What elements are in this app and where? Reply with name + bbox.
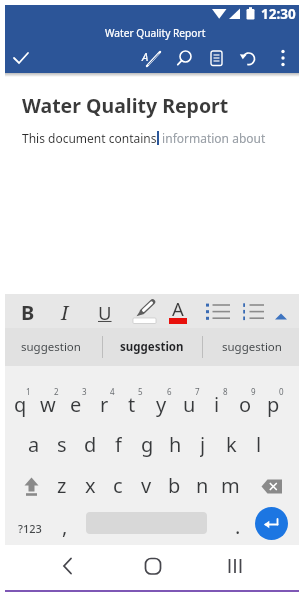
staticText: m <box>221 472 240 498</box>
staticText: 2 <box>54 386 59 397</box>
button[interactable] <box>203 298 233 324</box>
staticText: , <box>62 513 68 537</box>
button[interactable] <box>236 46 262 70</box>
button[interactable]: A <box>165 296 191 326</box>
button[interactable] <box>271 46 295 70</box>
button[interactable]: suggestion <box>4 335 98 359</box>
staticText: 8 <box>223 386 228 397</box>
staticText: i <box>214 391 220 417</box>
staticText: 5 <box>138 386 143 397</box>
button[interactable]: b <box>161 472 187 498</box>
staticText: t <box>128 391 136 417</box>
button[interactable] <box>18 472 46 500</box>
staticText: s <box>57 431 67 457</box>
button[interactable] <box>270 302 292 322</box>
button[interactable]: d <box>77 431 103 457</box>
button[interactable]: U <box>91 297 119 327</box>
button[interactable]: f <box>105 431 131 457</box>
button[interactable]: suggestion <box>205 335 299 359</box>
staticText: k <box>226 431 237 457</box>
button[interactable]: l <box>246 431 272 457</box>
staticText: o <box>239 391 252 417</box>
staticText: 6 <box>167 386 172 397</box>
button[interactable]: z <box>49 472 75 498</box>
button[interactable] <box>56 554 80 578</box>
staticText: c <box>113 472 123 498</box>
staticText: l <box>256 431 262 457</box>
staticText: 3 <box>82 386 87 397</box>
button[interactable]: i <box>204 391 230 417</box>
staticText: e <box>70 391 82 417</box>
button[interactable] <box>240 298 268 324</box>
button[interactable]: q <box>7 391 33 417</box>
button[interactable]: o <box>232 391 258 417</box>
button[interactable]: A <box>139 46 165 70</box>
button[interactable]: a <box>21 431 47 457</box>
staticText: suggestion <box>21 339 81 355</box>
staticText: U <box>98 300 112 325</box>
button[interactable]: t <box>119 391 145 417</box>
button[interactable]: . <box>229 513 247 537</box>
button[interactable]: n <box>189 472 215 498</box>
staticText: n <box>196 472 209 498</box>
staticText: suggestion <box>120 339 184 355</box>
staticText: 7 <box>195 386 200 397</box>
staticText: w <box>40 391 56 417</box>
button[interactable]: r <box>91 391 117 417</box>
button[interactable] <box>258 474 286 498</box>
staticText: h <box>169 431 182 457</box>
staticText: I <box>61 299 69 326</box>
staticText: y <box>156 391 167 417</box>
button[interactable]: c <box>105 472 131 498</box>
button[interactable]: y <box>148 391 174 417</box>
staticText: z <box>57 472 67 498</box>
button[interactable]: B <box>14 297 42 327</box>
staticText: v <box>141 472 152 498</box>
staticText: A <box>172 296 184 320</box>
staticText: 9 <box>251 386 256 397</box>
button[interactable]: , <box>56 513 74 537</box>
button[interactable] <box>141 554 165 578</box>
staticText: 12:30 <box>261 5 296 23</box>
button[interactable]: h <box>162 431 188 457</box>
staticText: x <box>85 472 96 498</box>
button[interactable] <box>204 46 230 70</box>
staticText: d <box>84 431 97 457</box>
button[interactable]: j <box>190 431 216 457</box>
button[interactable]: p <box>260 391 286 417</box>
button[interactable]: ?123 <box>12 517 48 539</box>
button[interactable]: suggestion <box>104 335 200 359</box>
staticText: r <box>100 391 109 417</box>
staticText: g <box>141 431 154 457</box>
button[interactable]: I <box>52 297 78 327</box>
staticText: 1 <box>26 386 31 397</box>
button[interactable]: v <box>133 472 159 498</box>
button[interactable]: e <box>63 391 89 417</box>
button[interactable] <box>8 46 34 70</box>
button[interactable]: m <box>217 472 243 498</box>
button[interactable] <box>255 507 288 540</box>
staticText: q <box>14 391 27 417</box>
button[interactable]: k <box>218 431 244 457</box>
staticText: 4 <box>110 386 115 397</box>
button[interactable]: x <box>77 472 103 498</box>
button[interactable] <box>172 46 198 70</box>
button[interactable]: g <box>134 431 160 457</box>
button[interactable] <box>223 554 247 578</box>
button[interactable] <box>131 296 159 326</box>
staticText: b <box>168 472 181 498</box>
staticText: 0 <box>279 386 284 397</box>
staticText: ?123 <box>18 521 42 536</box>
button[interactable]: w <box>35 391 61 417</box>
staticText: j <box>200 431 206 457</box>
staticText: p <box>267 391 280 417</box>
staticText: information about <box>159 130 266 146</box>
button[interactable]: u <box>176 391 202 417</box>
staticText: suggestion <box>222 339 282 355</box>
staticText: u <box>183 391 196 417</box>
staticText: A <box>142 49 149 64</box>
button[interactable]: s <box>49 431 75 457</box>
staticText: Water Quality Report <box>105 26 206 40</box>
staticText: Water Quality Report <box>22 92 229 119</box>
